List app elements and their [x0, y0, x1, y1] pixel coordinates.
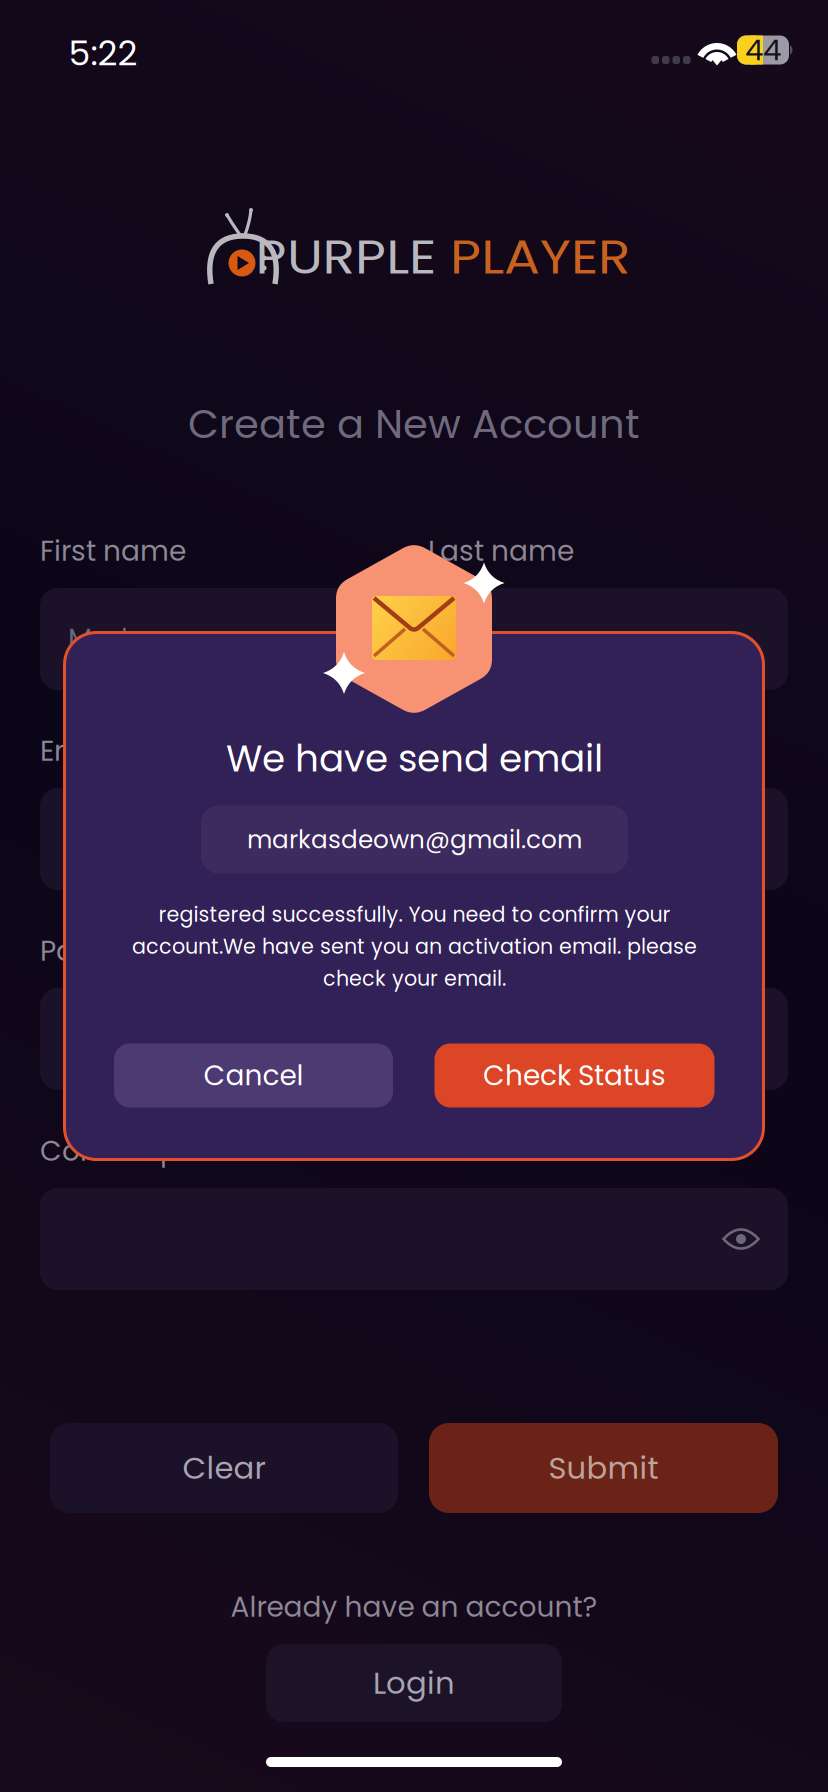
- button[interactable]: Clear: [50, 1423, 398, 1513]
- staticText: We have send email: [226, 732, 603, 785]
- staticText: PURPLE: [269, 222, 436, 292]
- staticText: Password: [40, 931, 175, 971]
- staticText: PLAYER: [436, 222, 616, 292]
- staticText: markasdeown@gmail.com: [68, 819, 448, 859]
- staticText: check your email.: [323, 964, 506, 993]
- staticText: Submit: [548, 1446, 658, 1489]
- button[interactable]: [40, 1188, 788, 1290]
- button[interactable]: Deown: [428, 588, 788, 690]
- staticText: 5:22: [68, 29, 137, 77]
- staticText: registered successfully. You need to con…: [158, 900, 670, 929]
- staticText: 44: [745, 29, 781, 71]
- button[interactable]: [40, 988, 788, 1090]
- button[interactable]: Submit: [429, 1423, 778, 1513]
- staticText: account.We have sent you an activation e…: [132, 932, 697, 961]
- staticText: Create a New Account: [188, 396, 640, 452]
- staticText: Deown: [456, 619, 552, 659]
- staticText: Mark: [68, 619, 135, 659]
- staticText: Login: [373, 1661, 455, 1704]
- staticText: Confirm password: [40, 1131, 298, 1171]
- button[interactable]: Cancel: [114, 1043, 393, 1107]
- button[interactable]: Check Status: [434, 1043, 714, 1107]
- staticText: Email: [40, 731, 116, 771]
- staticText: First name: [40, 531, 186, 571]
- staticText: Check Status: [483, 1056, 666, 1095]
- button[interactable]: Mark: [40, 588, 400, 690]
- button[interactable]: Login: [266, 1644, 562, 1722]
- staticText: Already have an account?: [230, 1587, 597, 1627]
- staticText: Cancel: [203, 1056, 303, 1095]
- staticText: Last name: [428, 531, 574, 571]
- staticText: markasdeown@gmail.com: [247, 822, 582, 857]
- button[interactable]: markasdeown@gmail.com: [40, 788, 788, 890]
- staticText: Clear: [182, 1446, 265, 1489]
